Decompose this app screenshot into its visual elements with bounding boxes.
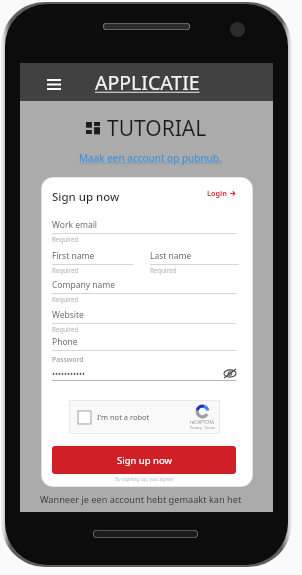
button[interactable]: First name: [52, 250, 133, 274]
staticText: Maak een account op pubnub.: [79, 151, 222, 165]
button[interactable]: Company name: [52, 279, 236, 303]
staticText: Phone: [52, 336, 78, 348]
button[interactable]: Website: [52, 309, 236, 333]
staticText: Sign up now: [117, 454, 172, 467]
staticText: Wanneer je een account hebt gemaakt kan …: [40, 493, 242, 506]
staticText: I'm not a robot: [97, 412, 150, 422]
staticText: Last name: [150, 250, 192, 262]
staticText: Login: [207, 188, 227, 198]
button[interactable]: Login: [207, 188, 235, 198]
staticText: Required: [52, 266, 79, 274]
staticText: By signing up, you agree: [52, 476, 236, 483]
staticText: Required: [52, 235, 79, 243]
button[interactable]: Phone: [52, 336, 236, 352]
staticText: Website: [52, 309, 84, 321]
button[interactable]: Menu: [43, 75, 65, 93]
button[interactable]: Maak een account op pubnub.: [79, 151, 222, 165]
button[interactable]: Last name: [150, 250, 239, 274]
button[interactable]: I'm not a robot: [69, 400, 220, 434]
staticText: First name: [52, 250, 95, 262]
button[interactable]: Sign up now: [52, 446, 236, 474]
staticText: Password: [52, 355, 84, 365]
staticText: TUTORIAL: [107, 114, 207, 143]
staticText: Required: [52, 295, 79, 303]
staticText: Privacy - Terms: [190, 425, 215, 430]
staticText: Sign up now: [52, 189, 120, 205]
staticText: Required: [52, 325, 79, 333]
button[interactable]: Work email: [52, 219, 236, 243]
staticText: reCAPTCHA: [190, 419, 215, 425]
staticText: •••••••••••: [52, 368, 86, 379]
staticText: Company name: [52, 279, 116, 291]
staticText: APPLICATIE: [95, 69, 200, 96]
staticText: Work email: [52, 219, 98, 231]
button[interactable]: Password: [52, 355, 236, 381]
button[interactable]: Show password: [224, 369, 236, 378]
staticText: Required: [150, 266, 177, 274]
button[interactable]: APPLICATIE: [95, 69, 200, 96]
